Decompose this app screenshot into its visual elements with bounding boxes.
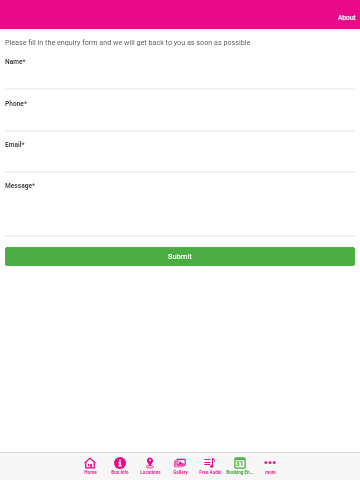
- button[interactable]: Home: [75, 453, 105, 480]
- staticText: Gallery: [173, 470, 188, 475]
- button[interactable]: 31: [225, 453, 255, 480]
- button[interactable]: Locations: [135, 453, 165, 480]
- button[interactable]: more: [255, 453, 285, 480]
- staticText: 31: [236, 460, 244, 468]
- button[interactable]: Submit: [5, 247, 355, 266]
- button[interactable]: Gallery: [165, 453, 195, 480]
- button[interactable]: About: [328, 5, 360, 25]
- staticText: Phone*: [5, 100, 27, 108]
- staticText: Message*: [5, 182, 35, 190]
- staticText: Home: [84, 470, 97, 475]
- button[interactable]: Bus.Info: [105, 453, 135, 480]
- staticText: Locations: [140, 470, 161, 475]
- staticText: more: [265, 470, 276, 475]
- staticText: Free Audio: [199, 470, 222, 475]
- staticText: Name*: [5, 58, 26, 66]
- staticText: Submit: [168, 252, 192, 261]
- staticText: About: [338, 14, 356, 22]
- staticText: Bus.Info: [111, 470, 129, 475]
- button[interactable]: Free Audio: [195, 453, 225, 480]
- staticText: Email*: [5, 141, 25, 149]
- staticText: Please fill in the enquiry form and we w…: [5, 38, 251, 46]
- staticText: Booking En...: [226, 470, 254, 475]
